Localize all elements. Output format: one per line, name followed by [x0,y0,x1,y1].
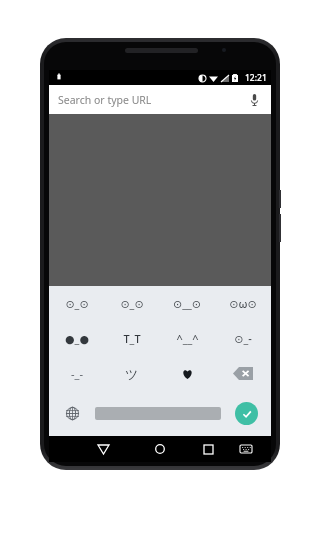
staticText: ⊙ω⊙ [229,296,257,311]
button[interactable]: T_T [104,321,159,356]
staticText: Search or type URL [58,93,246,107]
button[interactable]: ⊙_⊙ [104,286,159,321]
button[interactable]: Back [90,436,116,462]
button[interactable]: Change keyboard language [49,391,95,436]
staticText: ツ [125,366,139,382]
button[interactable]: ⊙_- [215,321,271,356]
button[interactable]: Voice search [246,92,262,108]
button[interactable]: Backspace [215,356,271,391]
button[interactable]: -_- [49,356,104,391]
button[interactable]: Switch keyboard [233,436,259,462]
button[interactable]: ⊙_⊙ [49,286,104,321]
staticText: ⊙_⊙ [65,296,89,311]
staticText: ⊙__⊙ [173,296,201,311]
staticText: ⊙_⊙ [120,296,144,311]
button[interactable]: Home [147,436,173,462]
staticText: 12:21 [245,72,267,84]
staticText: T_T [123,331,141,346]
button[interactable]: ツ [104,356,159,391]
button[interactable]: ●_● [49,321,104,356]
button[interactable]: ^__^ [159,321,215,356]
button[interactable]: Search or type URL [49,85,271,114]
staticText: ⊙_- [234,331,252,346]
button[interactable]: ⊙ω⊙ [215,286,271,321]
staticText: ^__^ [176,331,199,346]
staticText: -_- [71,366,83,381]
button[interactable]: Recent apps [195,436,221,462]
staticText: ●_● [65,331,89,346]
button[interactable]: Enter [221,391,271,436]
button[interactable]: ⊙__⊙ [159,286,215,321]
button[interactable] [159,356,215,391]
